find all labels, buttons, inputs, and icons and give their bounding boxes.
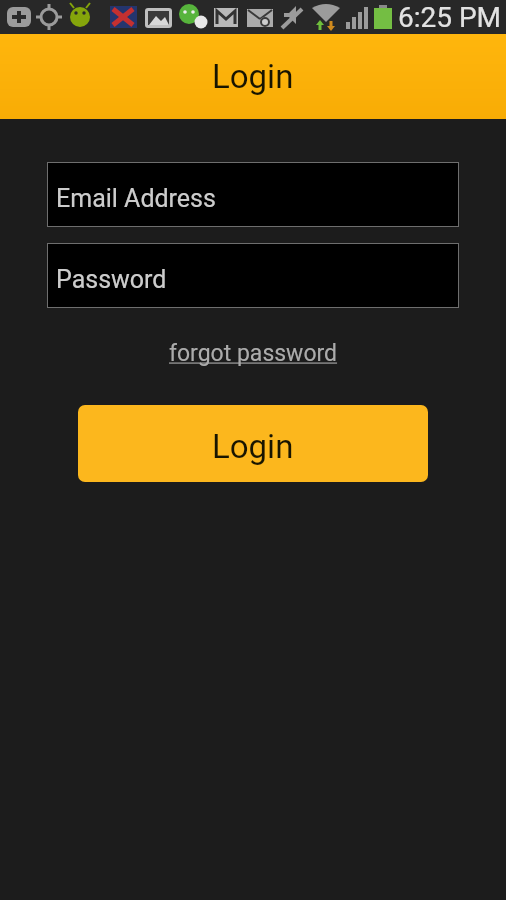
staticText: Login [212,427,294,466]
button[interactable]: Email Address [47,162,459,227]
staticText: Login [212,57,294,96]
staticText: Password [56,265,167,294]
button[interactable]: forgot password [169,340,338,367]
staticText: 6:25 PM [398,1,502,34]
button[interactable]: Login [78,405,428,482]
staticText: Email Address [56,184,216,213]
button[interactable]: Password [47,243,459,308]
